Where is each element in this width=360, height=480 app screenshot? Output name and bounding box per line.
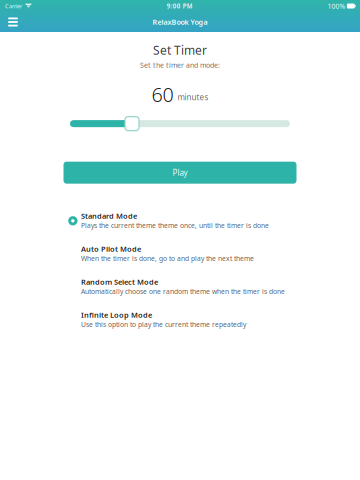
staticText: Set the timer and mode: [140, 60, 220, 70]
staticText: 9:00 PM [167, 2, 193, 10]
button[interactable]: Standard Mode [68, 211, 340, 244]
staticText: Auto Pilot Mode [81, 244, 141, 254]
staticText: Set Timer [153, 42, 207, 58]
staticText: RelaxBook Yoga [152, 17, 207, 27]
staticText: Infinite Loop Mode [81, 310, 152, 320]
staticText: Play [172, 167, 187, 178]
button[interactable]: Random Select Mode [68, 277, 340, 310]
staticText: Carrier [5, 2, 22, 10]
staticText: Use this option to play the current them… [81, 320, 246, 329]
staticText: minutes [177, 92, 208, 103]
button[interactable]: Play [63, 162, 296, 184]
staticText: Plays the current theme theme once, unti… [81, 221, 269, 230]
button[interactable]: Menu [2, 12, 24, 32]
staticText: When the timer is done, go to and play t… [81, 254, 254, 263]
staticText: Random Select Mode [81, 277, 158, 287]
button[interactable]: Infinite Loop Mode [68, 310, 340, 343]
staticText: Automatically choose one random theme wh… [81, 287, 285, 296]
staticText: 100% [327, 1, 345, 11]
staticText: 60 [151, 81, 173, 108]
staticText: Standard Mode [81, 211, 137, 221]
button[interactable]: Auto Pilot Mode [68, 244, 340, 277]
